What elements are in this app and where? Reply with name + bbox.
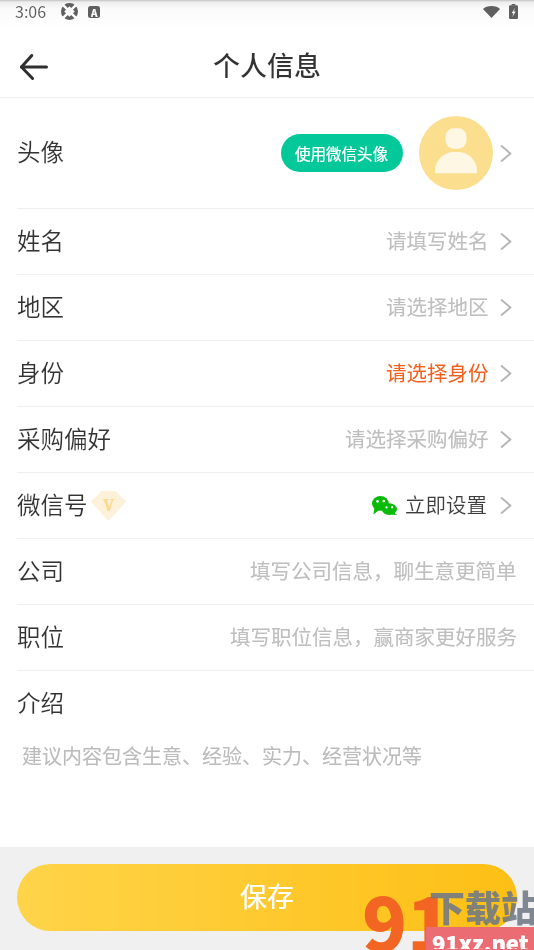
staticText: 立即设置 — [405, 489, 487, 519]
staticText: 3:06 — [15, 0, 47, 22]
button[interactable]: 使用微信头像 — [281, 134, 403, 172]
staticText: 微信号 — [17, 487, 88, 521]
button[interactable]: 地区 — [0, 275, 534, 340]
staticText: 个人信息 — [213, 45, 321, 84]
staticText: 地区 — [17, 289, 64, 323]
button[interactable]: 头像 — [0, 98, 534, 208]
staticText: 头像 — [17, 134, 64, 168]
button[interactable]: Back — [12, 45, 56, 89]
staticText: 职位 — [17, 619, 64, 653]
staticText: 请选择身份 — [386, 357, 489, 387]
staticText: 采购偏好 — [17, 421, 111, 455]
button[interactable]: 保存 — [17, 864, 517, 931]
staticText: 91xz.net — [432, 926, 529, 949]
button[interactable]: 职位 — [0, 605, 534, 670]
staticText: 请选择地区 — [386, 291, 489, 321]
button[interactable]: 采购偏好 — [0, 407, 534, 472]
button[interactable]: 微信号 — [0, 473, 534, 538]
staticText: 建议内容包含生意、经验、实力、经营状况等 — [22, 741, 422, 770]
staticText: 保存 — [240, 876, 294, 915]
staticText: 身份 — [17, 355, 64, 389]
staticText: 91 — [362, 866, 453, 950]
staticText: V — [103, 494, 115, 516]
staticText: 下载站 — [429, 880, 534, 932]
staticText: 介绍 — [17, 685, 64, 719]
staticText: 使用微信头像 — [295, 142, 389, 164]
staticText: 姓名 — [17, 223, 64, 257]
button[interactable]: 公司 — [0, 539, 534, 604]
staticText: 填写公司信息，聊生意更简单 — [250, 555, 517, 585]
staticText: A — [91, 6, 98, 17]
staticText: 请选择采购偏好 — [345, 423, 489, 453]
staticText: 请填写姓名 — [386, 225, 489, 255]
button[interactable]: 身份 — [0, 341, 534, 406]
staticText: 填写职位信息，赢商家更好服务 — [230, 621, 517, 651]
button[interactable]: 姓名 — [0, 209, 534, 274]
staticText: 公司 — [17, 553, 64, 587]
